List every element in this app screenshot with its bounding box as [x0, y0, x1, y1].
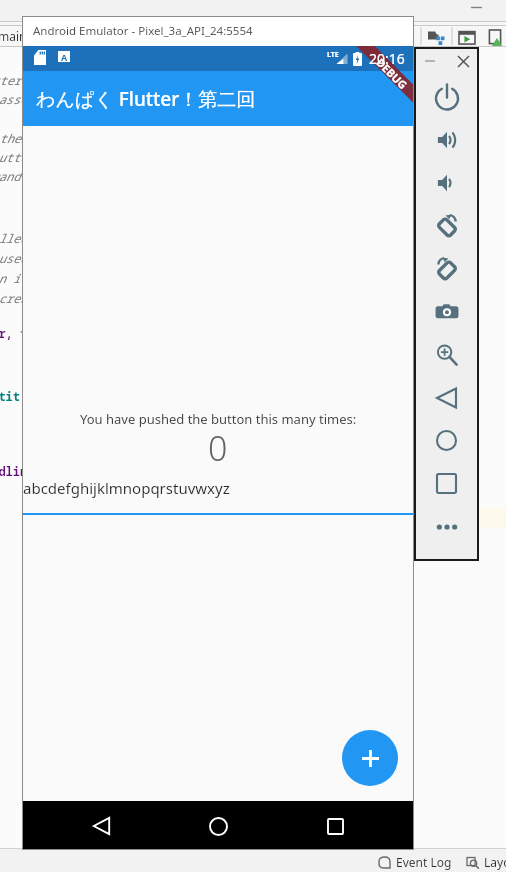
- staticText: DEBUG: [373, 55, 411, 92]
- staticText: Layou: [484, 854, 506, 870]
- staticText: ain it: [0, 270, 28, 286]
- button[interactable]: Increment: [342, 730, 398, 786]
- button[interactable]: Minimize: [421, 52, 439, 70]
- staticText: 0: [208, 425, 228, 471]
- staticText: abcdefghijklmnopqrstuvwxyz: [23, 478, 230, 498]
- staticText: eadline: [0, 463, 35, 479]
- button[interactable]: Recent apps: [315, 806, 355, 846]
- button[interactable]: Volume down: [414, 161, 479, 204]
- staticText: e used: [0, 250, 28, 266]
- staticText: 20:16: [369, 49, 405, 68]
- button[interactable]: Take screenshot: [414, 290, 479, 333]
- staticText: e assets: [0, 91, 42, 107]
- button[interactable]: Power: [414, 75, 479, 118]
- staticText: わんぱく Flutter！第二回: [36, 86, 256, 112]
- button[interactable]: Back: [81, 806, 121, 846]
- staticText: You have pushed the button this many tim…: [80, 410, 357, 428]
- staticText: A: [61, 51, 68, 62]
- button[interactable]: Zoom: [414, 333, 479, 376]
- button[interactable]: Rotate left: [414, 204, 479, 247]
- button[interactable]: Overview: [414, 462, 479, 505]
- staticText: ter, t: [0, 325, 28, 341]
- button[interactable]: More: [414, 505, 479, 548]
- staticText: tter: [0, 72, 21, 88]
- staticText: Flutter: [0, 149, 35, 165]
- button[interactable]: Home: [198, 806, 238, 846]
- button[interactable]: Rotate right: [414, 247, 479, 290]
- button[interactable]: Volume up: [414, 118, 479, 161]
- button[interactable]: Back: [414, 376, 479, 419]
- button[interactable]: Home: [414, 419, 479, 462]
- button[interactable]: Close: [454, 52, 472, 70]
- staticText: LTE: [327, 50, 339, 60]
- staticText: there: [0, 130, 36, 146]
- staticText: Event Log: [396, 854, 452, 870]
- staticText: Android Emulator - Pixel_3a_API_24:5554: [33, 23, 253, 39]
- staticText: y tit: [0, 388, 21, 404]
- staticText: ommand: [0, 168, 21, 184]
- staticText: e creat: [0, 290, 35, 306]
- staticText: main: [0, 28, 27, 44]
- staticText: rolled: [0, 230, 28, 246]
